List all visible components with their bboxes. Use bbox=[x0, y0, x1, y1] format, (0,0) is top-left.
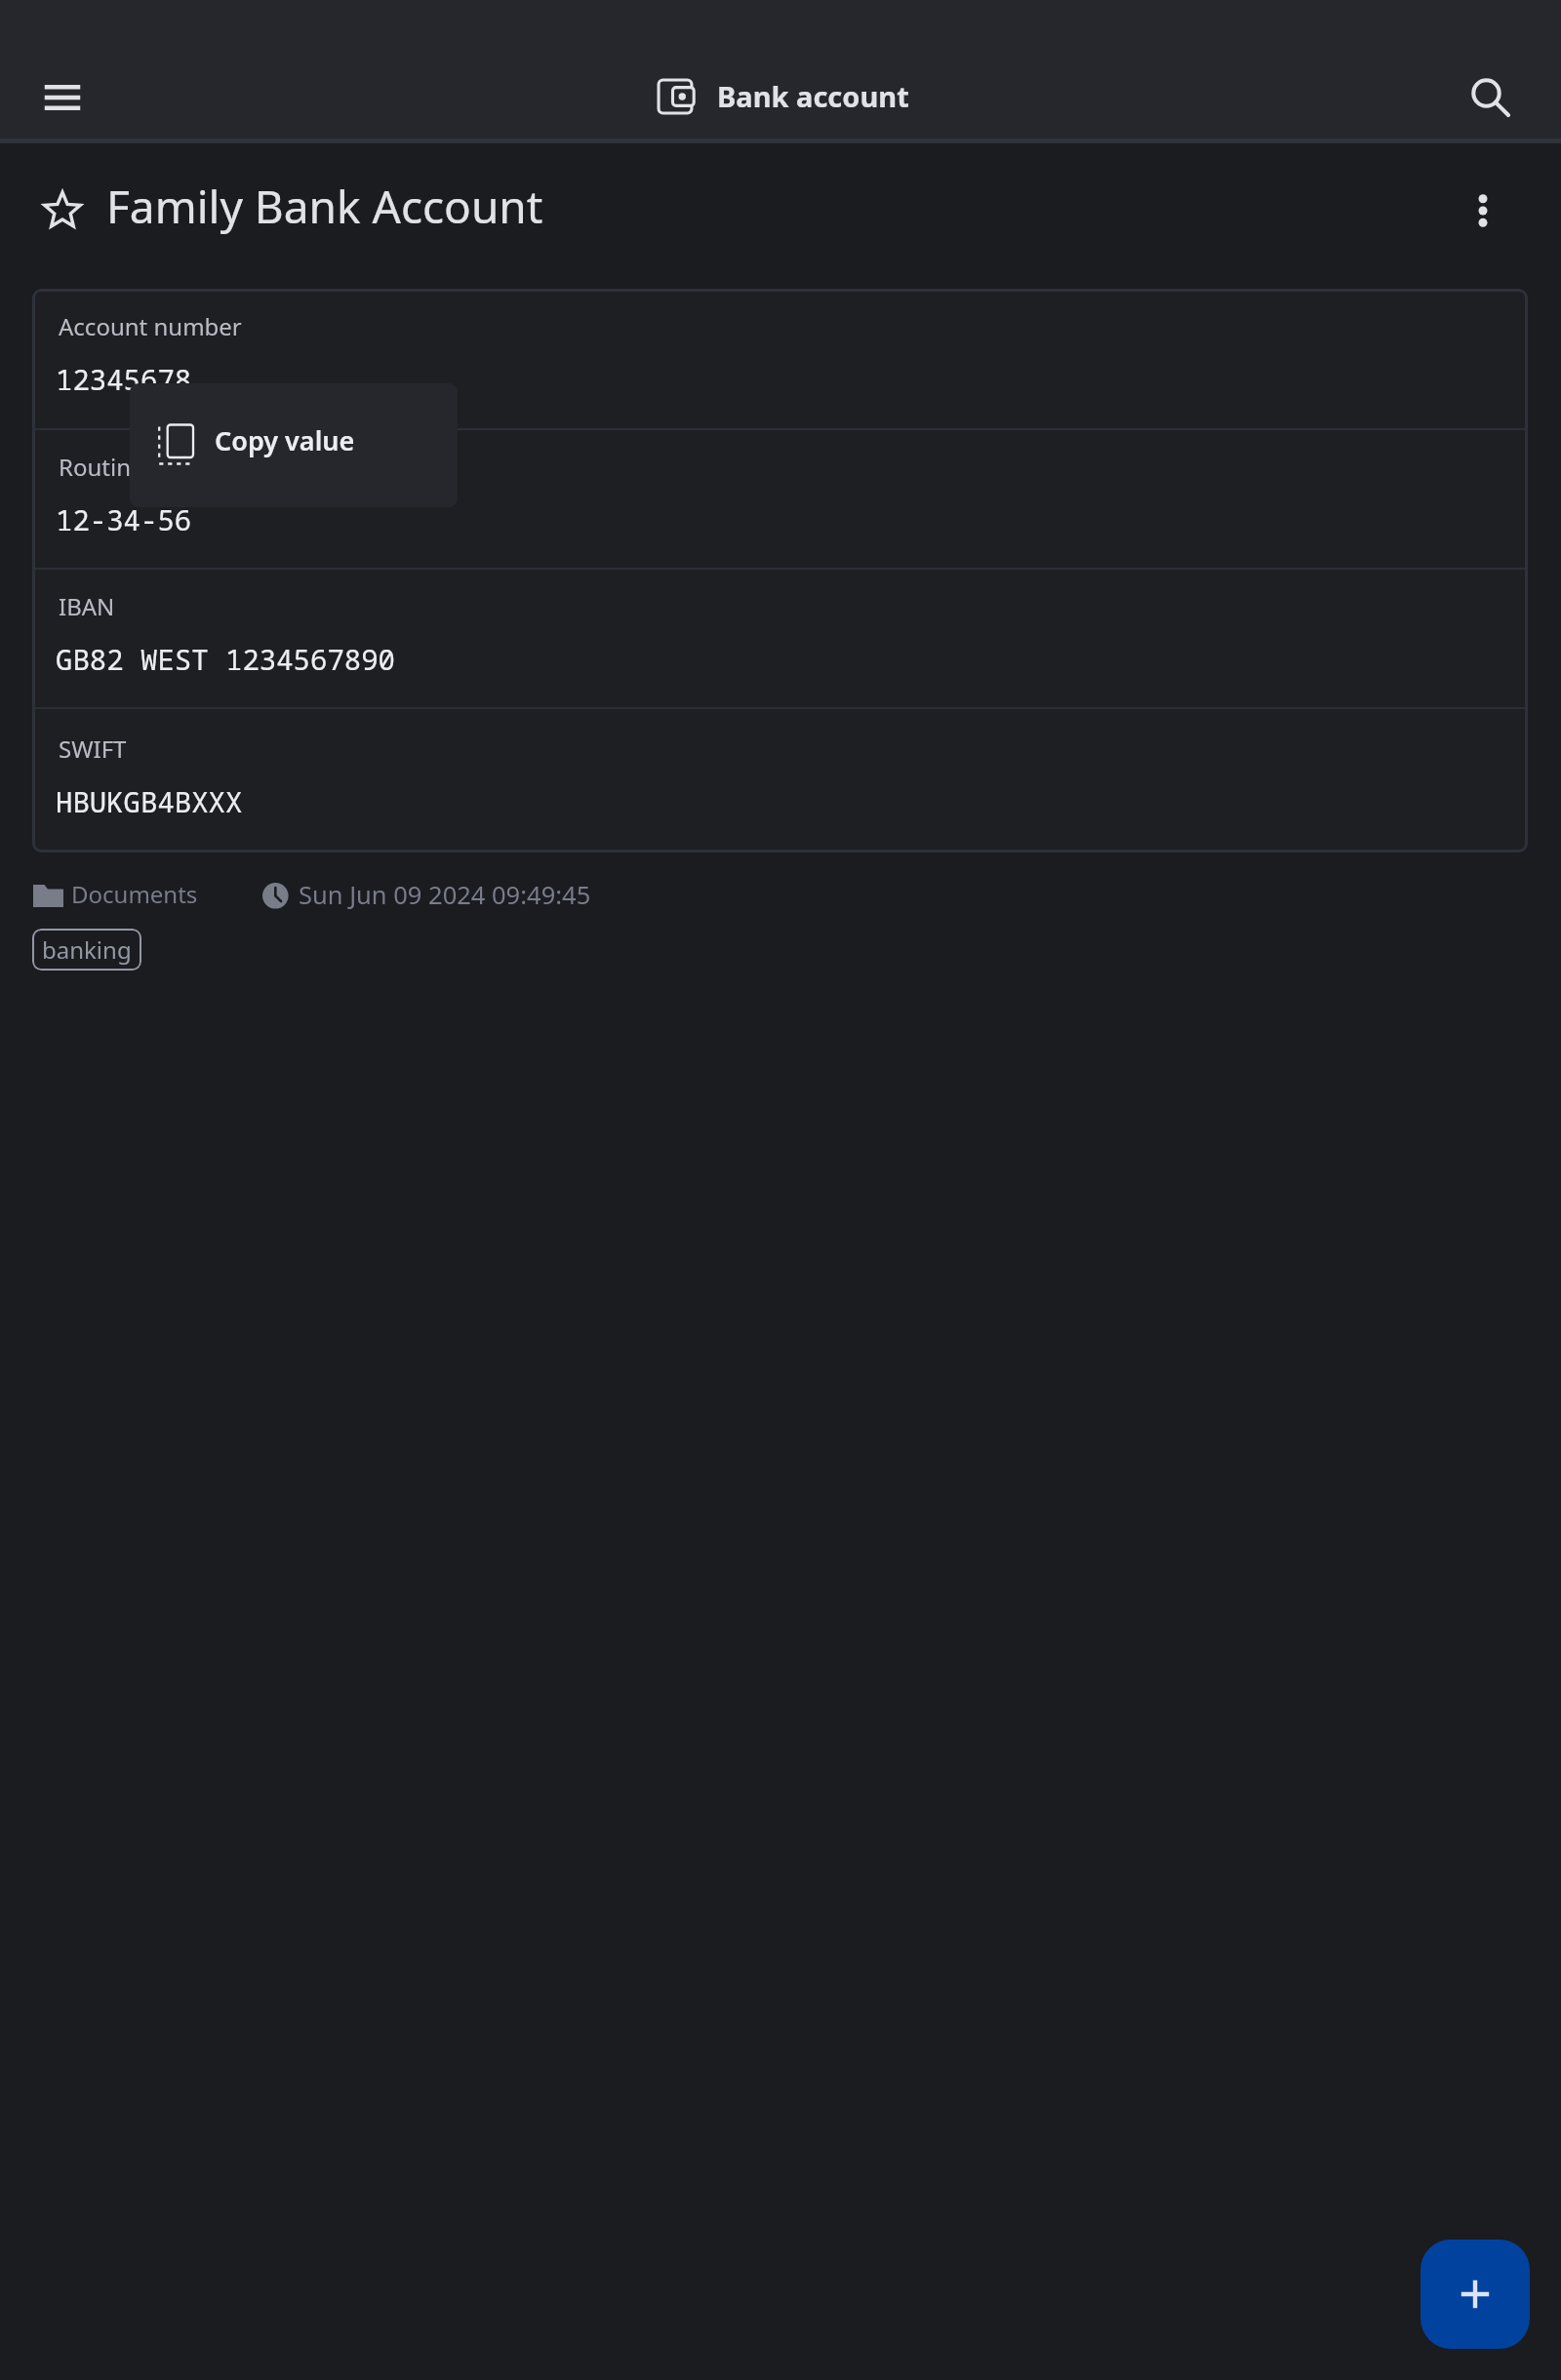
staticText: Copy value bbox=[215, 422, 355, 458]
staticText: SWIFT bbox=[59, 733, 127, 765]
staticText: banking bbox=[42, 933, 132, 966]
button[interactable]: Search bbox=[1453, 59, 1529, 136]
staticText: HBUKGB4BXXX bbox=[56, 782, 243, 820]
staticText: Documents bbox=[71, 878, 198, 910]
staticText: Routing number bbox=[59, 451, 240, 483]
button[interactable]: Toggle favourite bbox=[43, 190, 82, 228]
staticText: IBAN bbox=[59, 590, 115, 622]
staticText: 12345678 bbox=[56, 360, 192, 398]
button[interactable]: Add item bbox=[1421, 2240, 1530, 2349]
staticText: Sun Jun 09 2024 09:49:45 bbox=[299, 878, 591, 912]
button[interactable]: Account number bbox=[32, 289, 1528, 428]
button[interactable]: banking bbox=[32, 929, 141, 971]
staticText: Bank account bbox=[717, 77, 909, 115]
button[interactable]: IBAN bbox=[32, 570, 1528, 707]
staticText: GB82 WEST 1234567890 bbox=[56, 640, 396, 678]
staticText: Account number bbox=[59, 310, 242, 342]
staticText: 12-34-56 bbox=[56, 500, 192, 538]
button[interactable]: More options bbox=[1450, 178, 1516, 244]
button[interactable]: Copy value bbox=[130, 383, 458, 507]
button[interactable]: Open navigation menu bbox=[24, 59, 100, 136]
button[interactable]: SWIFT bbox=[32, 709, 1528, 853]
staticText: Family Bank Account bbox=[106, 176, 543, 237]
button[interactable]: Routing number bbox=[32, 430, 1528, 568]
